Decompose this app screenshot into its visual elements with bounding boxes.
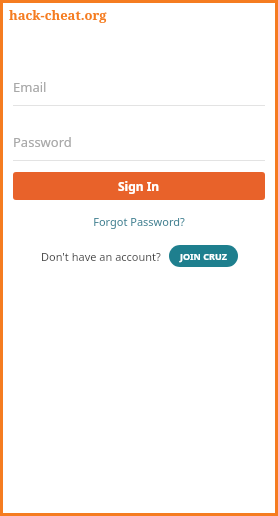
button[interactable]: Email [13, 78, 265, 106]
staticText: JOIN CRUZ [180, 250, 227, 262]
staticText: Sign In [118, 178, 160, 194]
staticText: Don't have an account? [41, 249, 161, 264]
button[interactable]: Sign In [13, 172, 265, 200]
button[interactable]: Forgot Password? [85, 211, 193, 232]
button[interactable]: Password [13, 133, 265, 161]
button[interactable]: JOIN CRUZ [169, 245, 238, 267]
staticText: Forgot Password? [93, 214, 185, 229]
staticText: hack-cheat.org [9, 6, 107, 24]
staticText: Email [13, 78, 47, 96]
staticText: Password [13, 133, 72, 151]
